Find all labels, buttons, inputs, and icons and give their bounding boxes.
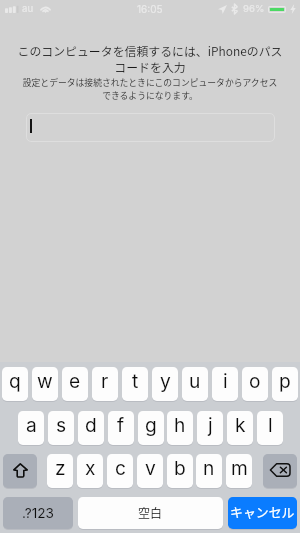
staticText: z — [55, 456, 66, 479]
staticText: j — [208, 413, 213, 436]
staticText: u — [189, 369, 201, 392]
button[interactable]: y — [152, 367, 178, 401]
staticText: e — [69, 369, 81, 392]
button[interactable]: i — [212, 367, 238, 401]
staticText: w — [37, 369, 53, 392]
staticText: s — [56, 413, 67, 436]
staticText: 設定とデータは接続されたときにこのコンピュータからアクセス できるようになります… — [0, 76, 300, 101]
staticText: p — [279, 369, 291, 392]
staticText: o — [249, 369, 261, 392]
button[interactable]: p — [272, 367, 298, 401]
button[interactable]: a — [18, 411, 44, 445]
button[interactable]: l — [257, 411, 283, 445]
button[interactable]: e — [62, 367, 88, 401]
staticText: i — [223, 369, 228, 392]
staticText: t — [132, 369, 139, 392]
staticText: c — [115, 456, 126, 479]
button[interactable]: キャンセル — [228, 497, 297, 529]
staticText: f — [117, 413, 125, 436]
button[interactable]: o — [242, 367, 268, 401]
staticText: このコンピュータを信頼するには、iPhoneのパス コードを入力 — [0, 42, 300, 76]
button[interactable]: c — [107, 454, 133, 488]
staticText: 96% — [243, 3, 265, 15]
staticText: r — [101, 369, 109, 392]
button[interactable]: m — [226, 454, 252, 488]
button[interactable]: t — [122, 367, 148, 401]
button[interactable]: j — [197, 411, 223, 445]
staticText: v — [145, 456, 156, 479]
staticText: a — [26, 413, 37, 436]
staticText: q — [9, 369, 21, 392]
button[interactable]: u — [182, 367, 208, 401]
staticText: h — [174, 413, 186, 436]
staticText: .?123 — [22, 505, 54, 521]
staticText: y — [160, 369, 171, 392]
button[interactable]: b — [167, 454, 193, 488]
button[interactable]: x — [77, 454, 103, 488]
button[interactable]: .?123 — [3, 497, 73, 529]
staticText: 16:05 — [137, 3, 163, 15]
button[interactable]: f — [108, 411, 134, 445]
button[interactable]: r — [92, 367, 118, 401]
staticText: d — [85, 413, 97, 436]
button[interactable]: k — [227, 411, 253, 445]
staticText: g — [145, 413, 157, 436]
button[interactable]: d — [78, 411, 104, 445]
button[interactable]: Shift — [3, 454, 37, 488]
button[interactable]: h — [167, 411, 193, 445]
button[interactable]: s — [48, 411, 74, 445]
button[interactable]: 空白 — [78, 497, 223, 529]
staticText: m — [231, 456, 248, 479]
button[interactable]: w — [32, 367, 58, 401]
staticText: n — [203, 456, 215, 479]
staticText: x — [85, 456, 96, 479]
button[interactable]: n — [196, 454, 222, 488]
button[interactable]: v — [137, 454, 163, 488]
staticText: au — [22, 3, 34, 15]
staticText: キャンセル — [230, 502, 295, 521]
staticText: 空白 — [138, 504, 163, 521]
button[interactable]: Backspace — [263, 454, 297, 488]
staticText: k — [235, 413, 246, 436]
staticText: b — [174, 456, 186, 479]
button[interactable]: g — [138, 411, 164, 445]
staticText: l — [268, 413, 273, 436]
button[interactable]: q — [2, 367, 28, 401]
button[interactable]: Passcode field — [26, 113, 275, 142]
button[interactable]: z — [47, 454, 73, 488]
